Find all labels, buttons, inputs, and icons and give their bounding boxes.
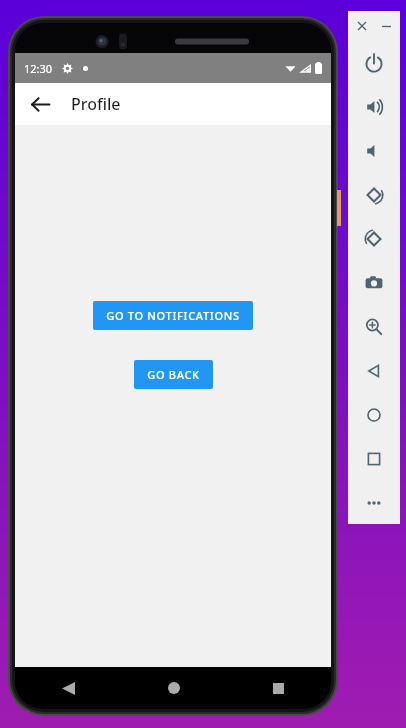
button[interactable]: Home — [121, 667, 226, 709]
staticText: GO BACK — [147, 367, 200, 382]
button[interactable]: More — [348, 481, 400, 524]
button[interactable]: Minimize — [377, 17, 395, 35]
button[interactable]: GO BACK — [134, 360, 213, 389]
button[interactable]: Zoom — [348, 305, 400, 349]
button[interactable]: Home — [348, 393, 400, 437]
button[interactable]: Close — [353, 17, 371, 35]
button[interactable]: Volume down — [348, 129, 400, 173]
button[interactable]: Rotate right — [348, 217, 400, 261]
button[interactable]: Rotate left — [348, 173, 400, 217]
staticText: 12:30 — [24, 61, 53, 76]
button[interactable]: Back — [23, 87, 57, 121]
staticText: Profile — [71, 93, 121, 115]
button[interactable]: Back — [15, 667, 121, 709]
button[interactable]: Take screenshot — [348, 261, 400, 305]
staticText: GO TO NOTIFICATIONS — [106, 308, 240, 323]
button[interactable]: Volume up — [348, 85, 400, 129]
button[interactable]: Back — [348, 349, 400, 393]
button[interactable]: Recent apps — [226, 667, 331, 709]
button[interactable]: Power — [348, 41, 400, 85]
button[interactable]: GO TO NOTIFICATIONS — [93, 301, 253, 330]
button[interactable]: Overview — [348, 437, 400, 481]
